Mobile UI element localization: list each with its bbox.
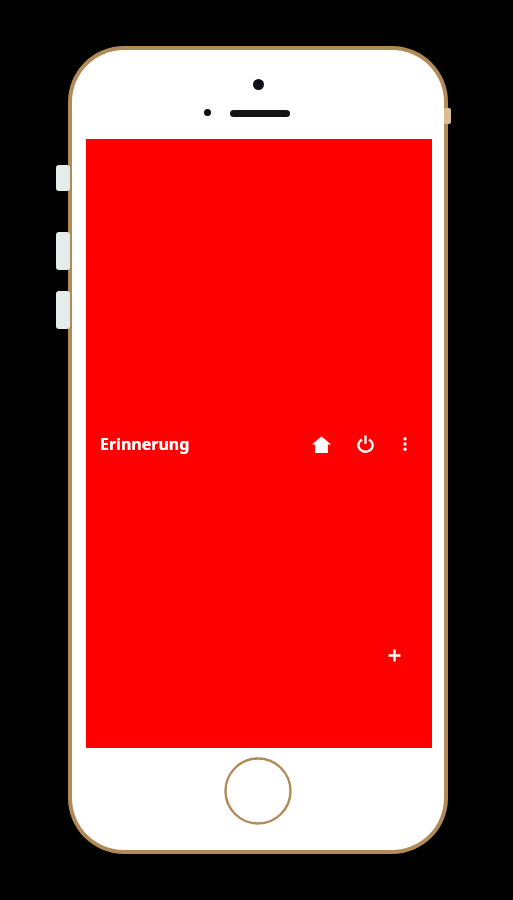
button[interactable]: Add reminder bbox=[369, 633, 419, 677]
button[interactable]: Power bbox=[348, 427, 382, 461]
button[interactable]: Home button bbox=[224, 757, 292, 825]
button[interactable]: More options bbox=[390, 429, 420, 459]
staticText: Erinnerung bbox=[100, 433, 190, 455]
button[interactable]: Home bbox=[304, 427, 338, 461]
